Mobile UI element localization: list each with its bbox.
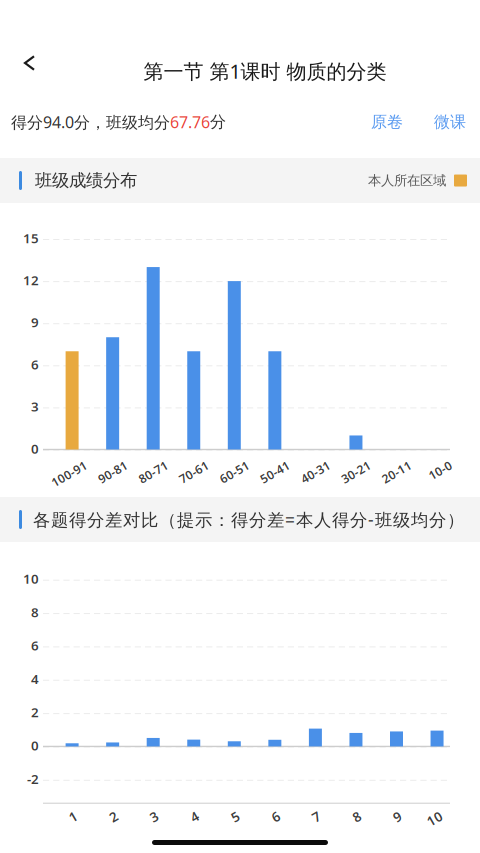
staticText: 6	[31, 636, 39, 654]
staticText: 班级成绩分布	[35, 170, 137, 191]
staticText: 各题得分差对比（提示：得分差=本人得分-班级均分）	[33, 508, 464, 531]
staticText: 40-31	[297, 456, 329, 472]
staticText: 6	[273, 811, 281, 829]
staticText: 10	[427, 811, 443, 829]
staticText: 100-91	[47, 456, 86, 472]
staticText: 4	[192, 811, 200, 829]
staticText: 20-11	[378, 456, 410, 472]
staticText: 8	[354, 811, 362, 829]
staticText: 3	[151, 811, 159, 829]
staticText: 90-81	[94, 456, 126, 472]
staticText: 80-71	[135, 456, 167, 472]
staticText: -2	[27, 770, 39, 788]
staticText: 10-0	[426, 456, 451, 472]
staticText: 2	[110, 811, 118, 829]
staticText: 67.76	[170, 111, 210, 133]
staticText: 12	[23, 271, 39, 289]
staticText: 3	[31, 397, 39, 415]
staticText: 15	[23, 229, 39, 247]
button[interactable]: Back	[5, 49, 51, 95]
staticText: 30-21	[338, 456, 370, 472]
staticText: 原卷	[371, 112, 403, 132]
staticText: 5	[232, 811, 240, 829]
staticText: 1	[70, 811, 78, 829]
staticText: 50-41	[257, 456, 289, 472]
staticText: 0	[31, 440, 39, 457]
staticText: 7	[313, 811, 321, 829]
staticText: 8	[31, 603, 39, 621]
staticText: 4	[31, 670, 39, 688]
staticText: 2	[31, 703, 39, 721]
button[interactable]: 微课	[403, 112, 466, 132]
staticText: 6	[31, 355, 39, 373]
button[interactable]: 原卷	[371, 112, 403, 132]
staticText: 0	[31, 737, 39, 754]
staticText: 60-51	[216, 456, 248, 472]
staticText: 9	[394, 811, 402, 829]
staticText: 得分94.0分，班级均分	[11, 111, 170, 133]
staticText: 分	[210, 112, 226, 132]
staticText: 10	[23, 570, 39, 587]
staticText: 微课	[434, 112, 466, 132]
staticText: 9	[31, 313, 39, 331]
staticText: 本人所在区域	[368, 172, 446, 189]
staticText: 第一节 第1课时 物质的分类	[143, 58, 386, 84]
staticText: 70-61	[176, 456, 208, 472]
